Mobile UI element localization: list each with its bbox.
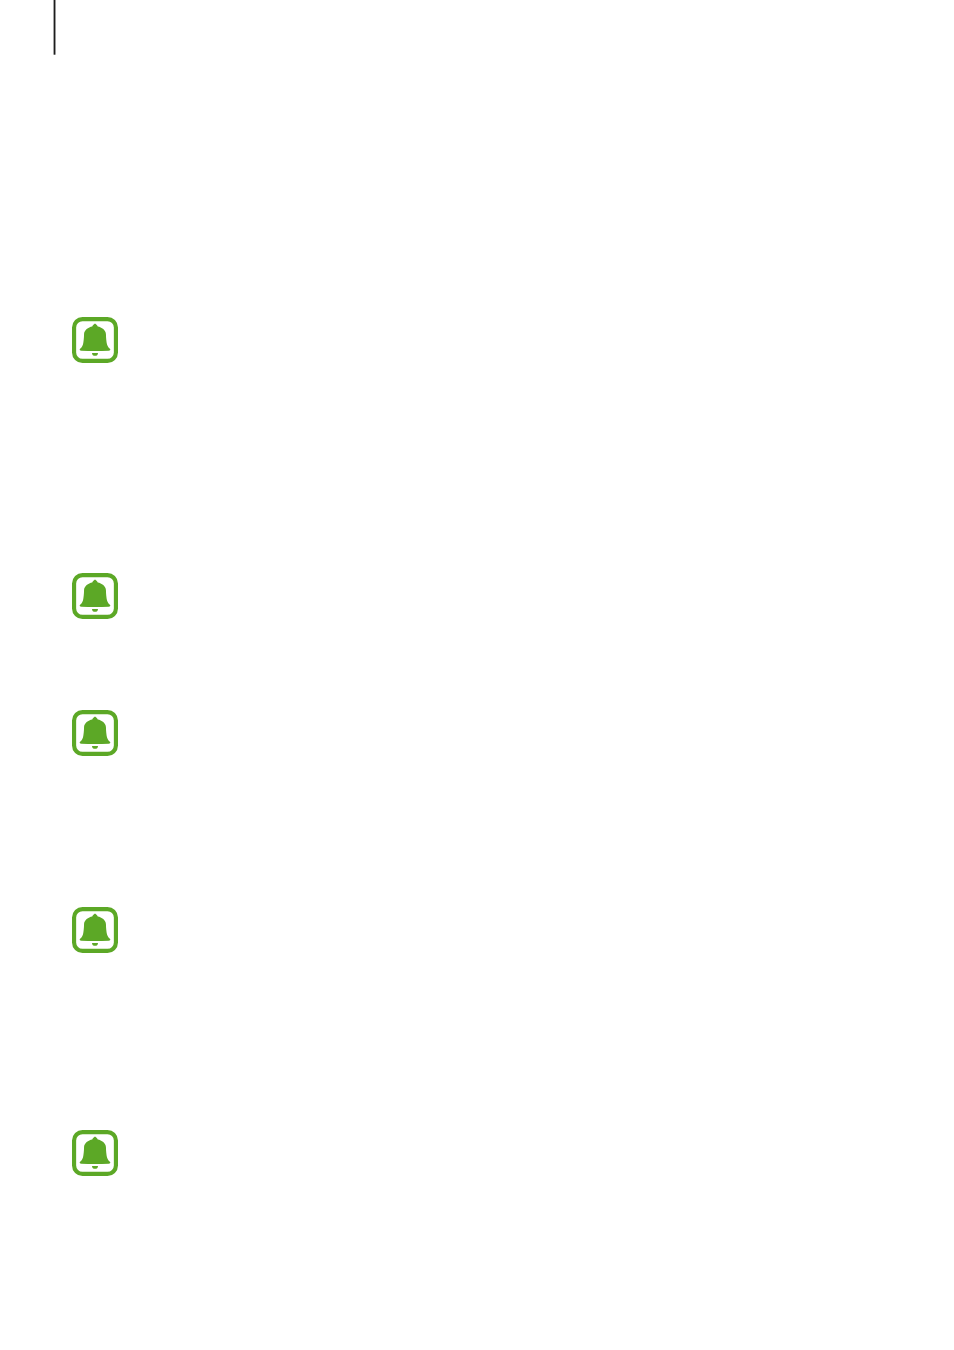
- button[interactable]: Notice 3: [72, 710, 118, 756]
- button[interactable]: Notice 1: [0, 0, 954, 363]
- button[interactable]: Notice 2: [72, 573, 118, 619]
- button[interactable]: Notice 3: [0, 619, 954, 756]
- button[interactable]: Notice 4: [72, 907, 118, 953]
- button[interactable]: Notice 2: [0, 363, 954, 619]
- button[interactable]: Notice 1: [72, 317, 118, 363]
- button[interactable]: Notice 5: [72, 1130, 118, 1176]
- button[interactable]: Notice 5: [0, 953, 954, 1176]
- button[interactable]: Notice 4: [0, 756, 954, 953]
